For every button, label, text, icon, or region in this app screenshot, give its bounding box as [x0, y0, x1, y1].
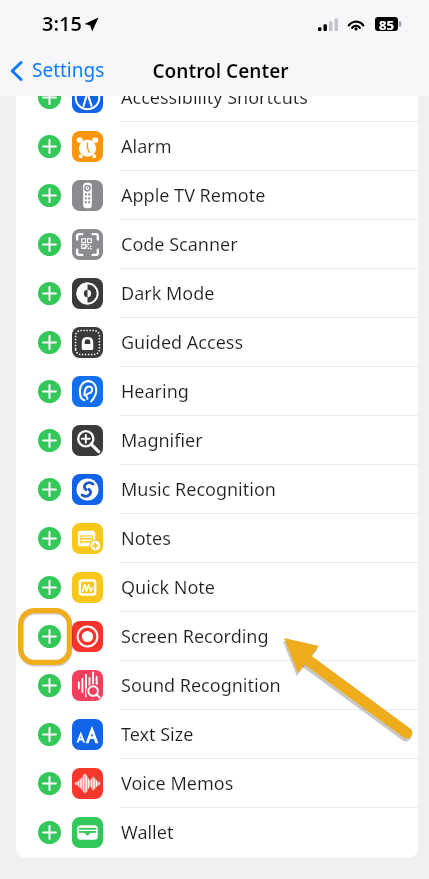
- button[interactable]: Hearing: [16, 367, 418, 416]
- staticText: Magnifier: [121, 428, 203, 453]
- button[interactable]: Text Size: [16, 710, 418, 759]
- button[interactable]: Apple TV Remote: [16, 171, 418, 220]
- button[interactable]: Sound Recognition: [16, 661, 418, 710]
- button[interactable]: Quick Note: [16, 563, 418, 612]
- button[interactable]: Music Recognition: [16, 465, 418, 514]
- staticText: Hearing: [121, 379, 189, 404]
- button[interactable]: Magnifier: [16, 416, 418, 465]
- staticText: Quick Note: [121, 575, 215, 600]
- staticText: Alarm: [121, 134, 172, 159]
- staticText: Screen Recording: [121, 624, 269, 649]
- staticText: Accessibility Shortcuts: [121, 85, 308, 110]
- staticText: Control Center: [24, 58, 417, 84]
- staticText: Voice Memos: [121, 771, 234, 796]
- button[interactable]: Settings: [6, 57, 105, 83]
- button[interactable]: Accessibility Shortcuts: [16, 73, 418, 122]
- staticText: Sound Recognition: [121, 673, 281, 698]
- button[interactable]: Guided Access: [16, 318, 418, 367]
- staticText: Code Scanner: [121, 232, 238, 257]
- staticText: Dark Mode: [121, 281, 215, 306]
- staticText: 85: [375, 16, 398, 34]
- button[interactable]: Alarm: [16, 122, 418, 171]
- button[interactable]: Screen Recording: [16, 612, 418, 661]
- staticText: Music Recognition: [121, 477, 276, 502]
- staticText: Wallet: [121, 820, 174, 845]
- button[interactable]: Voice Memos: [16, 759, 418, 808]
- button[interactable]: Code Scanner: [16, 220, 418, 269]
- staticText: Settings: [32, 57, 105, 83]
- staticText: Guided Access: [121, 330, 244, 355]
- staticText: Apple TV Remote: [121, 183, 266, 208]
- button[interactable]: Wallet: [16, 808, 418, 857]
- staticText: 3:15: [42, 10, 82, 37]
- button[interactable]: Notes: [16, 514, 418, 563]
- button[interactable]: Dark Mode: [16, 269, 418, 318]
- staticText: Notes: [121, 526, 171, 551]
- staticText: Text Size: [121, 722, 194, 747]
